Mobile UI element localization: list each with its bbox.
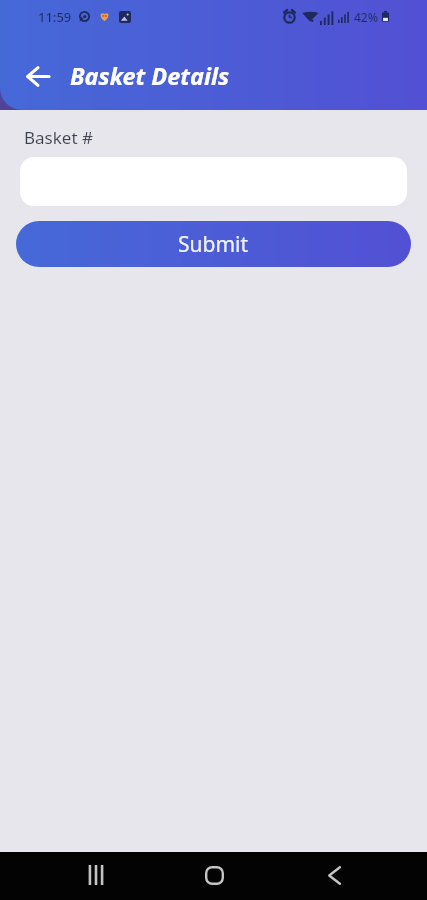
- button[interactable]: Back: [312, 853, 356, 897]
- staticText: Basket #: [24, 126, 93, 149]
- staticText: 11:59: [38, 8, 72, 26]
- staticText: Basket Details: [70, 60, 230, 92]
- button[interactable]: Submit: [16, 221, 411, 267]
- staticText: Submit: [178, 230, 249, 259]
- button[interactable]: Back: [24, 62, 52, 90]
- button[interactable]: Recent apps: [74, 853, 118, 897]
- staticText: 42%: [354, 9, 378, 25]
- button[interactable]: Home: [192, 853, 236, 897]
